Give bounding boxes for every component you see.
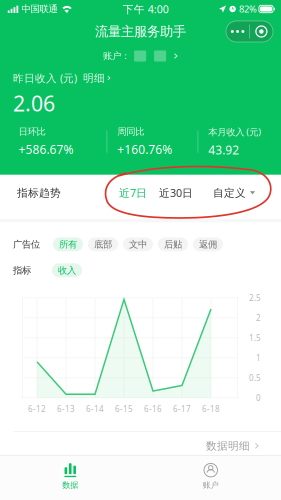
staticText: 6-12 xyxy=(28,403,46,414)
staticText: 2 xyxy=(256,312,261,323)
staticText: 后贴 xyxy=(164,239,182,250)
staticText: 2.06 xyxy=(13,89,55,117)
staticText: 指标趋势 xyxy=(17,186,61,199)
button[interactable]: 收入 xyxy=(52,263,82,277)
staticText: 昨日收入 (元) xyxy=(13,71,77,85)
staticText: 1 xyxy=(256,352,261,363)
staticText: 下午 4:00 xyxy=(123,2,169,16)
staticText: 流量主服务助手 xyxy=(95,23,186,40)
staticText: 2.5 xyxy=(249,292,261,303)
staticText: 账户 xyxy=(203,480,219,490)
button[interactable]: 数据 xyxy=(0,455,140,500)
staticText: 0.5 xyxy=(249,372,261,383)
staticText: 数据明细 xyxy=(206,439,250,452)
button[interactable]: 文中 xyxy=(123,237,153,251)
button[interactable]: 明细 xyxy=(83,71,111,85)
staticText: 底部 xyxy=(94,239,112,250)
staticText: 返佣 xyxy=(199,239,217,250)
staticText: 6-18 xyxy=(202,403,220,414)
button[interactable]: 近30日 xyxy=(147,186,193,200)
staticText: 6-16 xyxy=(144,403,162,414)
button[interactable]: 更多 xyxy=(226,21,273,42)
staticText: 账户： xyxy=(103,50,130,62)
staticText: 文中 xyxy=(129,239,147,250)
button[interactable]: 所有 xyxy=(53,237,83,251)
staticText: 中国联通 xyxy=(21,3,57,15)
button[interactable]: 账户 xyxy=(140,455,281,500)
staticText: 6-15 xyxy=(115,403,133,414)
staticText: 82% xyxy=(239,3,257,15)
staticText: 1.5 xyxy=(249,332,261,343)
staticText: 6-14 xyxy=(86,403,104,414)
button[interactable]: 数据明细 xyxy=(206,439,259,452)
staticText: 近30日 xyxy=(159,186,193,200)
staticText: 日环比 xyxy=(18,126,45,137)
staticText: +160.76% xyxy=(117,141,172,157)
staticText: 本月收入 (元) xyxy=(208,125,261,138)
staticText: 收入 xyxy=(58,265,76,276)
button[interactable]: 自定义 xyxy=(193,186,255,199)
staticText: 所有 xyxy=(59,239,77,250)
staticText: 43.92 xyxy=(208,142,239,158)
button[interactable]: 近7日 xyxy=(119,186,147,200)
staticText: 数据 xyxy=(62,480,78,490)
staticText: 自定义 xyxy=(213,186,246,199)
staticText: 周同比 xyxy=(117,126,144,137)
button[interactable]: 账户： xyxy=(103,45,178,67)
button[interactable]: 底部 xyxy=(88,237,118,251)
staticText: 广告位 xyxy=(13,239,40,250)
staticText: 近7日 xyxy=(119,186,147,200)
staticText: 6-13 xyxy=(57,403,75,414)
staticText: 0 xyxy=(256,392,261,403)
staticText: 6-17 xyxy=(173,403,191,414)
button[interactable]: 后贴 xyxy=(158,237,188,251)
button[interactable]: 返佣 xyxy=(193,237,223,251)
staticText: 指标 xyxy=(13,265,31,276)
staticText: 明细 xyxy=(83,71,105,85)
staticText: +586.67% xyxy=(18,141,73,157)
